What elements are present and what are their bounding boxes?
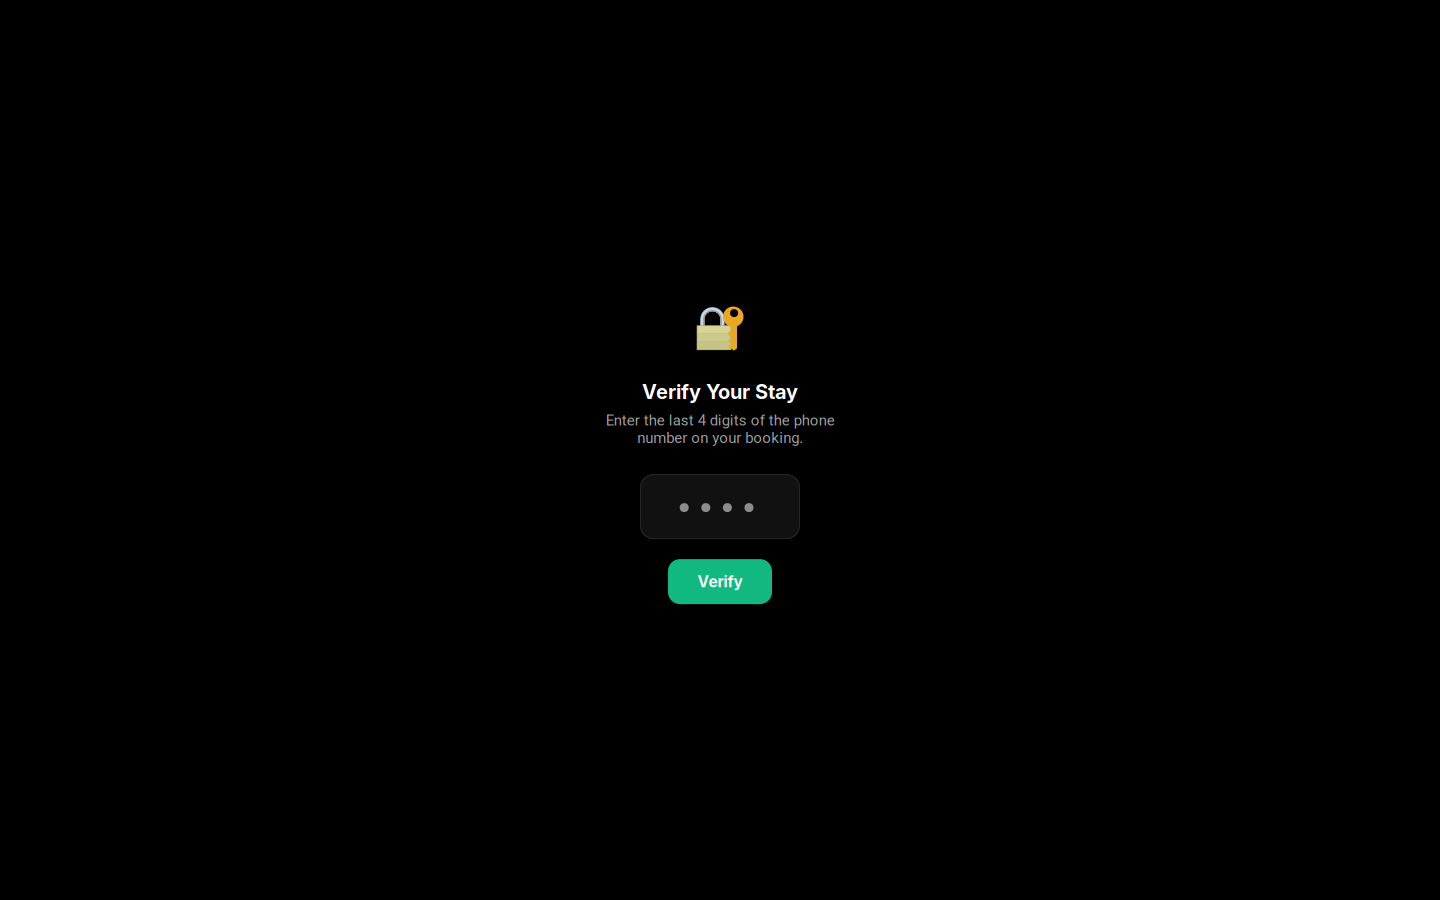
button[interactable]: Verify [668,559,772,604]
staticText: Verify [697,572,742,591]
button[interactable]: Last 4 digits of phone number [640,474,800,539]
staticText: Enter the last 4 digits of the phone num… [605,412,834,447]
staticText: Verify Your Stay [642,379,798,404]
